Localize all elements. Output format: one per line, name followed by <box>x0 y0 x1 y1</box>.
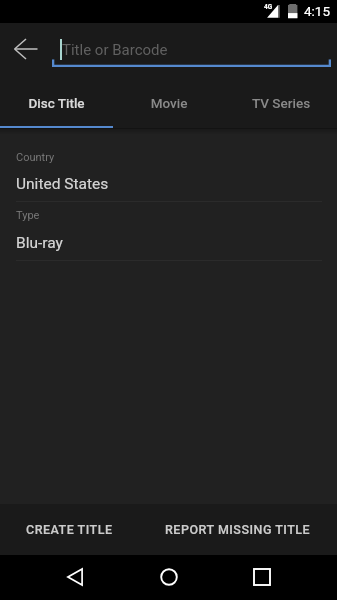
button[interactable]: CREATE TITLE <box>12 509 126 550</box>
button[interactable]: TV Series <box>225 81 337 129</box>
staticText: Disc Title <box>0 95 113 111</box>
button[interactable]: Title or Barcode <box>52 30 331 67</box>
button[interactable]: Recent apps <box>240 555 284 599</box>
staticText: CREATE TITLE <box>26 522 113 537</box>
button[interactable]: Country <box>0 142 337 201</box>
button[interactable]: Home <box>147 555 191 599</box>
button[interactable]: Navigate up <box>2 25 50 73</box>
staticText: 4:15 <box>304 3 331 19</box>
button[interactable]: Back <box>53 555 97 599</box>
button[interactable]: Disc Title <box>0 81 113 129</box>
staticText: Title or Barcode <box>62 41 168 59</box>
button[interactable]: Type <box>0 201 337 260</box>
button[interactable]: REPORT MISSING TITLE <box>152 509 324 550</box>
staticText: Country <box>16 151 55 164</box>
staticText: United States <box>16 175 109 193</box>
staticText: Type <box>16 209 40 222</box>
button[interactable]: Movie <box>113 81 225 129</box>
staticText: TV Series <box>225 95 337 111</box>
staticText: Blu-ray <box>16 234 63 252</box>
staticText: 4G <box>264 3 273 11</box>
staticText: REPORT MISSING TITLE <box>165 522 311 537</box>
staticText: Movie <box>113 95 225 111</box>
